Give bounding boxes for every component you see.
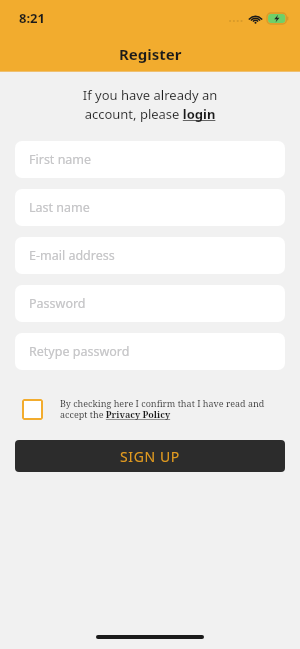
button[interactable]: If you have already an account, please l… [0, 86, 300, 123]
button[interactable]: Accept privacy policy [15, 392, 49, 426]
button[interactable]: Password [15, 285, 285, 322]
staticText: By checking here I confirm that I have r… [60, 397, 285, 421]
staticText: Register [119, 44, 182, 64]
staticText: Retype password [29, 343, 130, 360]
staticText: SIGN UP [120, 447, 180, 466]
staticText: First name [29, 151, 92, 168]
button[interactable]: SIGN UP [15, 440, 285, 472]
button[interactable]: Last name [15, 189, 285, 226]
button[interactable]: Retype password [15, 333, 285, 370]
staticText: If you have already an account, please l… [30, 86, 270, 123]
button[interactable]: E-mail address [15, 237, 285, 274]
staticText: Password [29, 295, 86, 312]
staticText: E-mail address [29, 247, 115, 264]
staticText: Last name [29, 199, 90, 216]
button[interactable]: First name [15, 141, 285, 178]
staticText: 8:21 [19, 9, 45, 27]
